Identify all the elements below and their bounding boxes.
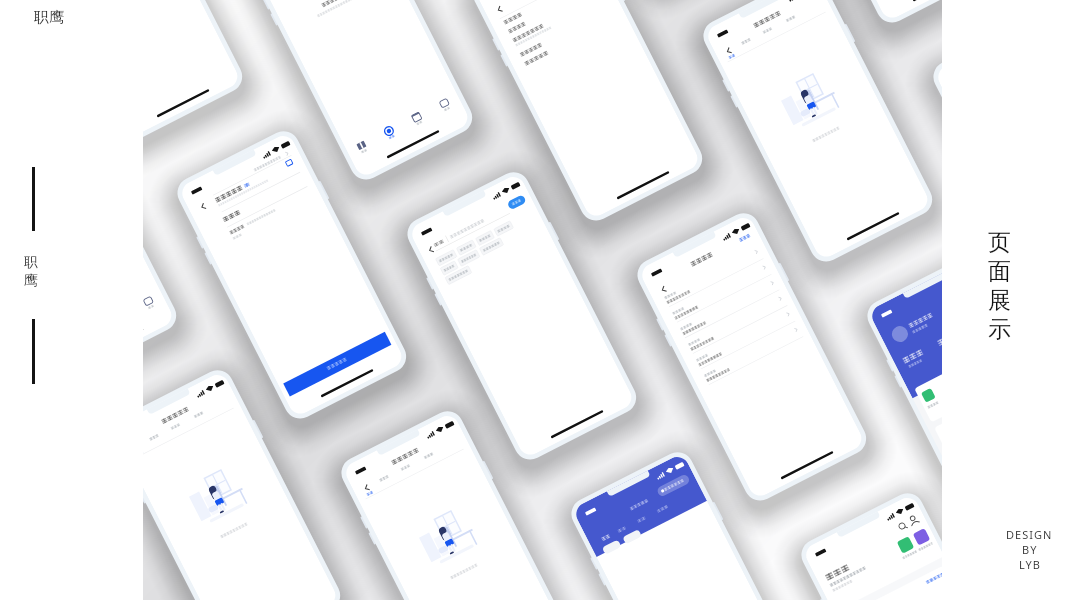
staticText: 职鹰 <box>34 8 64 27</box>
staticText: 面 <box>988 257 1011 286</box>
staticText: 展 <box>988 286 1011 315</box>
staticText: 职 <box>24 254 38 272</box>
staticText: 页 <box>988 228 1011 257</box>
staticText: 鹰 <box>24 272 38 290</box>
staticText: LYB <box>1019 557 1041 572</box>
staticText: 示 <box>988 315 1011 344</box>
staticText: BY <box>1022 542 1038 557</box>
staticText: DESIGN <box>1006 527 1053 542</box>
